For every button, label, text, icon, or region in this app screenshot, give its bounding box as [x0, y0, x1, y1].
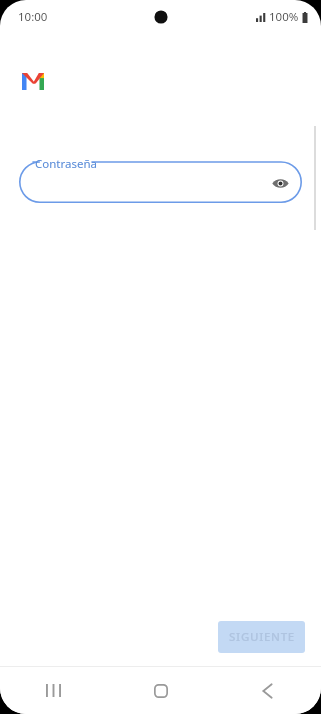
- button[interactable]: Recientes: [0, 667, 107, 714]
- button[interactable]: Atrás: [214, 667, 321, 714]
- staticText: Contraseña: [35, 156, 98, 172]
- button[interactable]: Mostrar contraseña: [269, 172, 291, 194]
- button[interactable]: Contraseña: [19, 157, 302, 203]
- staticText: 10:00: [18, 9, 48, 25]
- staticText: 100%: [269, 9, 299, 25]
- button[interactable]: SIGUIENTE: [218, 621, 305, 653]
- button[interactable]: Inicio: [107, 667, 214, 714]
- staticText: SIGUIENTE: [229, 629, 295, 645]
